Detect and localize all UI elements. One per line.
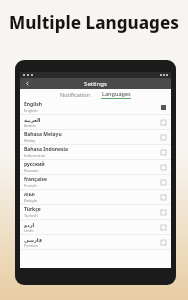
staticText: اردو [24,222,35,228]
staticText: française [24,176,47,183]
button[interactable]: française [20,175,171,189]
staticText: Indonesian [24,153,46,158]
button[interactable]: اردو [20,220,171,234]
button[interactable]: فارسی [20,235,171,249]
staticText: Settings [84,80,107,88]
staticText: Russian [24,168,39,173]
button[interactable]: Notification [55,90,96,99]
staticText: ភាសា [24,191,36,198]
staticText: Persian [24,243,38,248]
staticText: русский [24,161,45,168]
staticText: Türkçe [24,206,41,213]
button[interactable]: العربية [20,115,171,129]
staticText: Bahasa Melayu [24,131,62,138]
button[interactable]: Back [23,79,32,88]
staticText: Turkish [24,213,38,218]
staticText: Bahasa Indonesia [24,146,69,153]
button[interactable]: Bahasa Indonesia [20,145,171,159]
staticText: Languages [102,90,131,97]
button[interactable]: English [20,100,171,114]
button[interactable]: Türkçe [20,205,171,219]
button[interactable]: русский [20,160,171,174]
staticText: English [24,108,38,113]
staticText: العربية [24,117,41,123]
staticText: English [24,101,42,108]
staticText: Arabic [24,123,36,128]
button[interactable]: Languages [96,90,136,99]
staticText: Bangla [24,198,38,203]
staticText: Multiple Languages [0,11,188,34]
staticText: French [24,183,37,188]
button[interactable]: ភាសា [20,190,171,204]
button[interactable]: Bahasa Melayu [20,130,171,144]
staticText: Urdu [24,228,34,233]
staticText: Notification [60,91,91,98]
staticText: Malay [24,138,36,143]
staticText: فارسی [24,237,43,243]
